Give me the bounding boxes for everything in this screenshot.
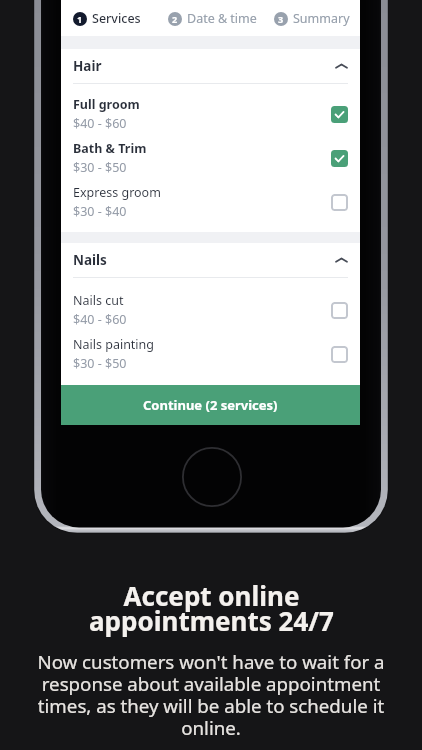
staticText: Continue (2 services) xyxy=(143,396,278,414)
staticText: 3 xyxy=(278,13,284,25)
other: Collapse section xyxy=(336,255,347,266)
button[interactable]: Nails painting xyxy=(73,332,348,376)
button[interactable]: Continue (2 services) xyxy=(61,385,360,425)
staticText: $30 - $50 xyxy=(73,355,127,372)
staticText: Nails cut xyxy=(73,292,124,309)
other: Not selected xyxy=(331,346,348,363)
staticText: Full groom xyxy=(73,96,140,113)
staticText: Nails painting xyxy=(73,336,155,353)
staticText: $40 - $60 xyxy=(73,311,127,328)
other: Selected xyxy=(331,106,348,123)
button[interactable]: Bath & Trim xyxy=(73,136,348,180)
staticText: $30 - $50 xyxy=(73,159,127,176)
button[interactable]: 1 xyxy=(73,10,141,27)
staticText: Now customers won't have to wait for a r… xyxy=(29,649,393,741)
staticText: 1 xyxy=(77,13,83,25)
other: Home button xyxy=(33,0,389,534)
staticText: Express groom xyxy=(73,184,161,201)
staticText: $40 - $60 xyxy=(73,115,127,132)
staticText: Services xyxy=(92,10,141,27)
button[interactable]: Nails cut xyxy=(73,288,348,332)
other: Not selected xyxy=(331,302,348,319)
other: Selected xyxy=(331,150,348,167)
button[interactable]: 3 xyxy=(274,10,350,27)
staticText: Bath & Trim xyxy=(73,140,147,157)
staticText: 2 xyxy=(172,13,178,25)
other: Collapse section xyxy=(336,61,347,72)
other: Not selected xyxy=(331,194,348,211)
staticText: Hair xyxy=(73,57,102,75)
button[interactable]: Hair xyxy=(61,49,360,83)
staticText: Summary xyxy=(293,10,350,27)
button[interactable]: Express groom xyxy=(73,180,348,224)
button[interactable]: 2 xyxy=(168,10,257,27)
staticText: Nails xyxy=(73,251,107,269)
button[interactable]: Full groom xyxy=(73,92,348,136)
staticText: $30 - $40 xyxy=(73,203,127,220)
staticText: Date & time xyxy=(187,10,257,27)
button[interactable]: Nails xyxy=(61,243,360,277)
staticText: Accept online appointments 24/7 xyxy=(89,578,334,639)
